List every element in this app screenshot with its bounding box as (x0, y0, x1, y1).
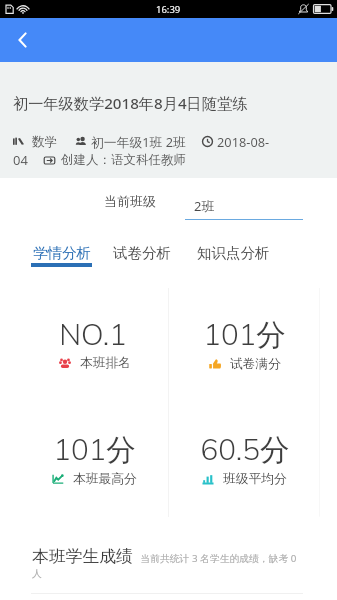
staticText: 16:39 (156, 3, 181, 16)
button[interactable]: 试卷分析 (113, 244, 171, 263)
button[interactable]: 2班 (185, 190, 303, 220)
button[interactable]: Back (0, 18, 46, 62)
button[interactable]: 60.5分 (168, 430, 320, 487)
staticText: 试卷分析 (113, 244, 171, 262)
staticText: 初一年级1班 2班 (91, 133, 186, 150)
button[interactable]: NO.1 (16, 315, 169, 371)
staticText: 本班排名 (80, 355, 131, 371)
staticText: 试卷满分 (230, 356, 281, 372)
staticText: 101分 (53, 430, 136, 468)
staticText: 初一年级数学2018年8月4日随堂练 (13, 93, 248, 114)
staticText: 知识点分析 (197, 244, 270, 262)
staticText: 创建人：语文科任教师 (61, 152, 186, 168)
staticText: 班级平均分 (223, 471, 287, 487)
staticText: 101分 (203, 315, 286, 353)
staticText: 学情分析 (33, 244, 91, 262)
staticText: 当前班级 (104, 193, 156, 209)
staticText: 数学 (32, 134, 58, 150)
staticText: 本班最高分 (73, 471, 137, 487)
staticText: 2018-08- (217, 133, 270, 150)
button[interactable]: 学情分析 (31, 244, 92, 267)
button[interactable]: 101分 (168, 315, 320, 372)
staticText: 04 (13, 151, 28, 169)
staticText: 2班 (194, 197, 215, 215)
staticText: NO.1 (59, 315, 127, 352)
button[interactable]: 101分 (18, 430, 171, 487)
button[interactable]: 知识点分析 (195, 244, 271, 263)
staticText: 60.5分 (200, 430, 290, 468)
staticText: 本班学生成绩 当前共统计 3 名学生的成绩，缺考 0 人 (32, 546, 302, 580)
